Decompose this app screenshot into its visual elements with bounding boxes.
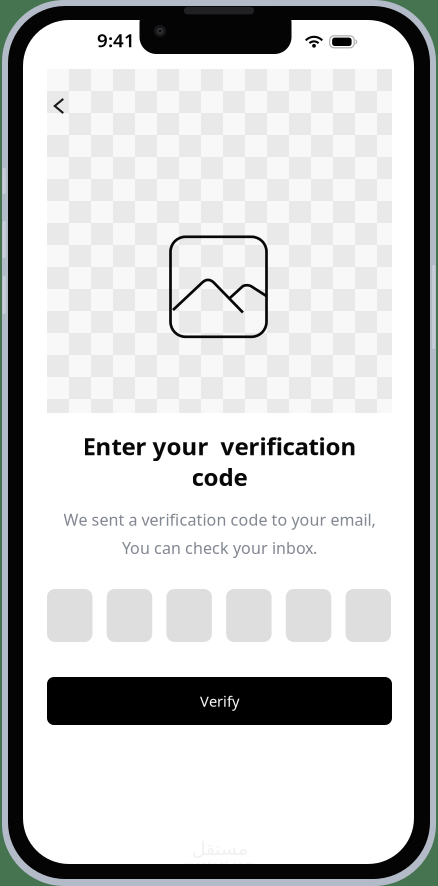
button[interactable]: Back <box>39 86 79 126</box>
staticText: code <box>191 461 247 493</box>
staticText: Verify <box>200 691 239 711</box>
staticText: mostaql.com <box>183 857 255 873</box>
staticText: مستقل <box>191 838 247 859</box>
staticText: We sent a verification code to your emai… <box>63 509 375 530</box>
staticText: You can check your inbox. <box>122 537 317 558</box>
staticText: 9:41 <box>97 28 135 52</box>
staticText: Enter your verification <box>82 430 356 462</box>
button[interactable]: Verify <box>47 677 392 725</box>
